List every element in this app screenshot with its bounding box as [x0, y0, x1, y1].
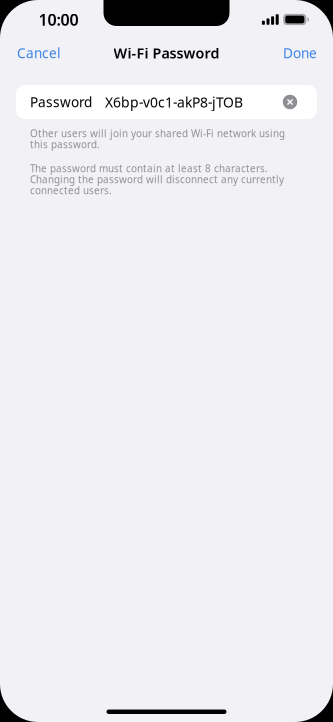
- staticText: 10:00: [38, 9, 78, 30]
- staticText: The password must contain at least 8 cha…: [30, 162, 268, 175]
- staticText: connected users.: [30, 184, 112, 197]
- staticText: Other users will join your shared Wi-Fi …: [30, 127, 285, 140]
- staticText: X6bp-v0c1-akP8-jTOB: [105, 93, 243, 111]
- button[interactable]: Cancel: [0, 39, 73, 67]
- staticText: Cancel: [17, 44, 61, 62]
- button[interactable]: Clear password: [275, 86, 305, 118]
- staticText: this password.: [30, 138, 100, 151]
- staticText: Password: [30, 93, 92, 111]
- staticText: Wi-Fi Password: [113, 43, 219, 63]
- staticText: Done: [283, 44, 317, 62]
- staticText: Changing the password will disconnect an…: [30, 173, 284, 186]
- button[interactable]: Done: [271, 39, 333, 67]
